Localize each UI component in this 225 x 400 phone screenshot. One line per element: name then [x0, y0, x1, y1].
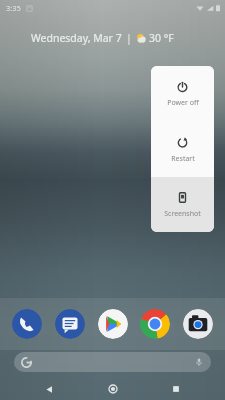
button[interactable]: Recents [161, 378, 191, 400]
staticText: Restart [171, 154, 195, 164]
button[interactable]: Wednesday, Mar 7 [31, 31, 174, 45]
button[interactable]: Back [34, 378, 64, 400]
button[interactable]: Phone [12, 309, 42, 339]
staticText: | [126, 31, 132, 45]
button[interactable]: Chrome [140, 309, 170, 339]
button[interactable]: Power off [151, 66, 214, 122]
staticText: Screenshot [164, 209, 201, 219]
button[interactable]: Restart [151, 122, 214, 177]
button[interactable]: Camera [183, 309, 213, 339]
staticText: 30 °F [149, 31, 174, 45]
staticText: 3:35 [6, 3, 21, 13]
staticText: Wednesday, Mar 7 [31, 31, 122, 45]
button[interactable]: Search [14, 352, 211, 372]
button[interactable]: Home [98, 378, 128, 400]
staticText: Power off [167, 98, 199, 108]
button[interactable]: Messages [55, 309, 85, 339]
button[interactable]: Screenshot [151, 177, 214, 232]
button[interactable]: Play Store [98, 309, 128, 339]
